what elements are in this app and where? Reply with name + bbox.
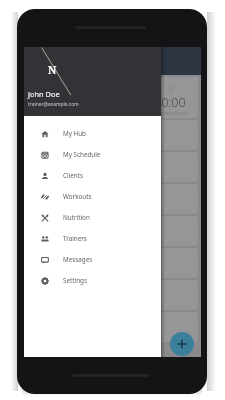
staticText: trainer@example.com xyxy=(28,101,79,108)
button[interactable] xyxy=(27,120,198,150)
button[interactable]: Nutrition xyxy=(24,207,161,228)
staticText: NO ACTIVE WORKOUT xyxy=(151,111,189,116)
staticText: Messages xyxy=(63,255,93,264)
button[interactable]: Messages xyxy=(24,249,161,270)
button[interactable]: Add xyxy=(170,332,194,356)
button[interactable]: Settings xyxy=(24,270,161,291)
staticText: Trainers xyxy=(63,234,87,243)
button[interactable]: My Schedule xyxy=(24,144,161,165)
button[interactable] xyxy=(27,248,198,278)
staticText: My Hub xyxy=(63,129,86,138)
button[interactable]: 00:00 xyxy=(27,77,198,118)
button[interactable] xyxy=(27,312,198,342)
staticText: Nutrition xyxy=(63,213,90,222)
staticText: Workouts xyxy=(63,192,92,201)
button[interactable] xyxy=(27,280,198,310)
staticText: 00:00 xyxy=(154,94,186,111)
staticText: My Schedule xyxy=(63,150,101,159)
button[interactable]: Clients xyxy=(24,165,161,186)
staticText: Clients xyxy=(63,171,83,180)
button[interactable] xyxy=(27,184,198,214)
button[interactable]: Workouts xyxy=(24,186,161,207)
button[interactable] xyxy=(27,216,198,246)
button[interactable]: Trainers xyxy=(24,228,161,249)
staticText: Settings xyxy=(63,276,87,285)
staticText: N xyxy=(48,63,57,77)
button[interactable]: My Hub xyxy=(24,123,161,144)
button[interactable] xyxy=(27,152,198,182)
staticText: John Doe xyxy=(28,89,60,99)
